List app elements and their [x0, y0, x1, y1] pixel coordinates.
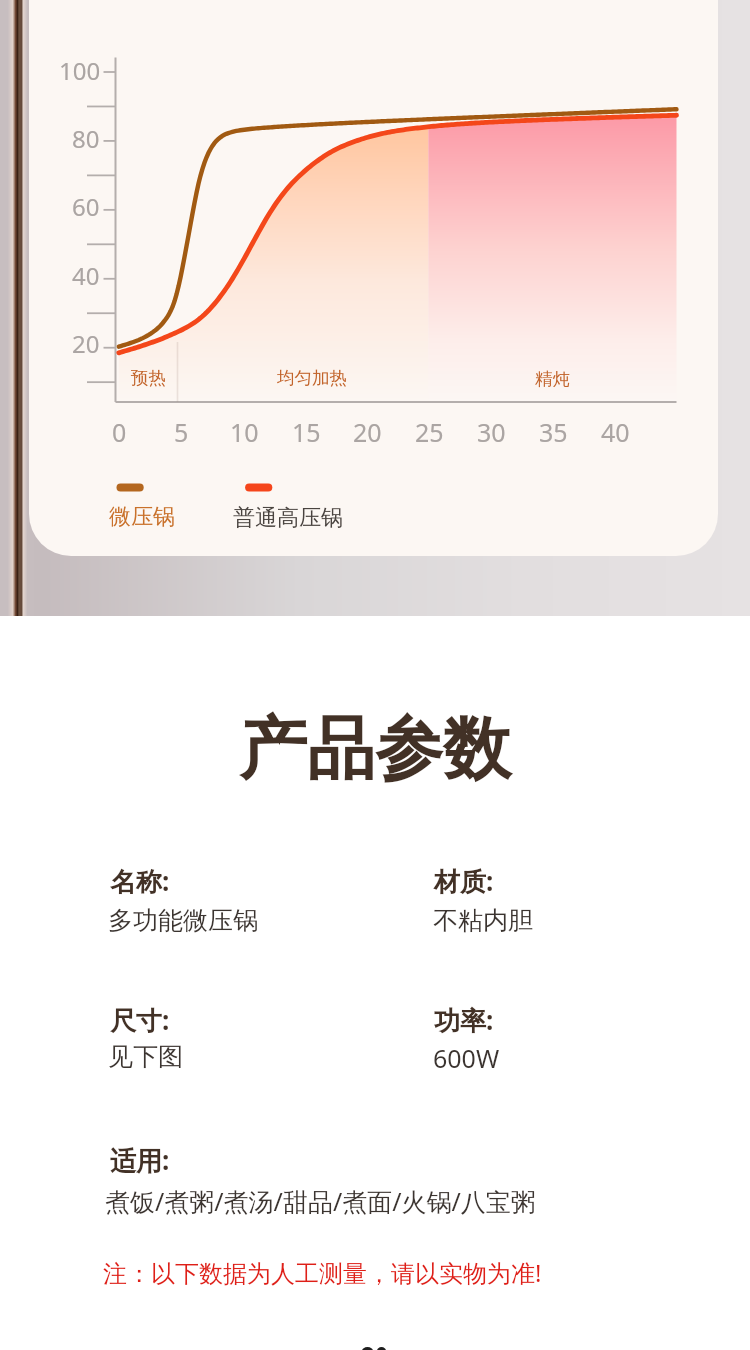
- staticText: 煮饭/煮粥/煮汤/甜品/煮面/火锅/八宝粥: [105, 1184, 536, 1218]
- staticText: 名称:: [110, 863, 170, 899]
- staticText: 尺寸:: [110, 1002, 170, 1038]
- staticText: 600W: [433, 1041, 500, 1075]
- staticText: 80: [72, 122, 100, 155]
- button[interactable]: 加热曲线对比图: [29, 0, 718, 556]
- staticText: 10: [230, 415, 259, 449]
- staticText: 25: [415, 415, 444, 449]
- staticText: 普通高压锅: [233, 504, 343, 532]
- staticText: 见下图: [108, 1041, 183, 1072]
- staticText: 15: [292, 415, 321, 449]
- staticText: 均匀加热: [277, 367, 347, 389]
- staticText: 多功能微压锅: [108, 905, 258, 936]
- staticText: 预热: [131, 367, 166, 389]
- staticText: 微压锅: [109, 503, 175, 531]
- staticText: 注：以下数据为人工测量，请以实物为准!: [103, 1256, 542, 1289]
- button[interactable]: 微压锅: [108, 478, 178, 530]
- staticText: 30: [477, 415, 506, 449]
- button[interactable]: 适用:: [104, 1138, 554, 1222]
- button[interactable]: 功率:: [428, 998, 658, 1082]
- button[interactable]: 材质:: [428, 859, 658, 943]
- staticText: 40: [601, 415, 630, 449]
- button[interactable]: 名称:: [104, 859, 334, 943]
- staticText: 功率:: [434, 1002, 494, 1038]
- staticText: 精炖: [535, 368, 570, 390]
- staticText: 0: [112, 415, 127, 449]
- staticText: 60: [72, 190, 100, 223]
- staticText: 20: [353, 415, 382, 449]
- staticText: 40: [72, 259, 100, 292]
- staticText: 100: [59, 54, 101, 87]
- staticText: 5: [174, 415, 189, 449]
- staticText: 适用:: [110, 1142, 170, 1178]
- staticText: 20: [72, 327, 100, 360]
- button[interactable]: 普通高压锅: [232, 478, 346, 530]
- staticText: 产品参数: [239, 707, 511, 793]
- staticText: 35: [539, 415, 568, 449]
- button[interactable]: 尺寸:: [104, 998, 334, 1082]
- staticText: 不粘内胆: [433, 905, 533, 936]
- staticText: 材质:: [434, 863, 494, 899]
